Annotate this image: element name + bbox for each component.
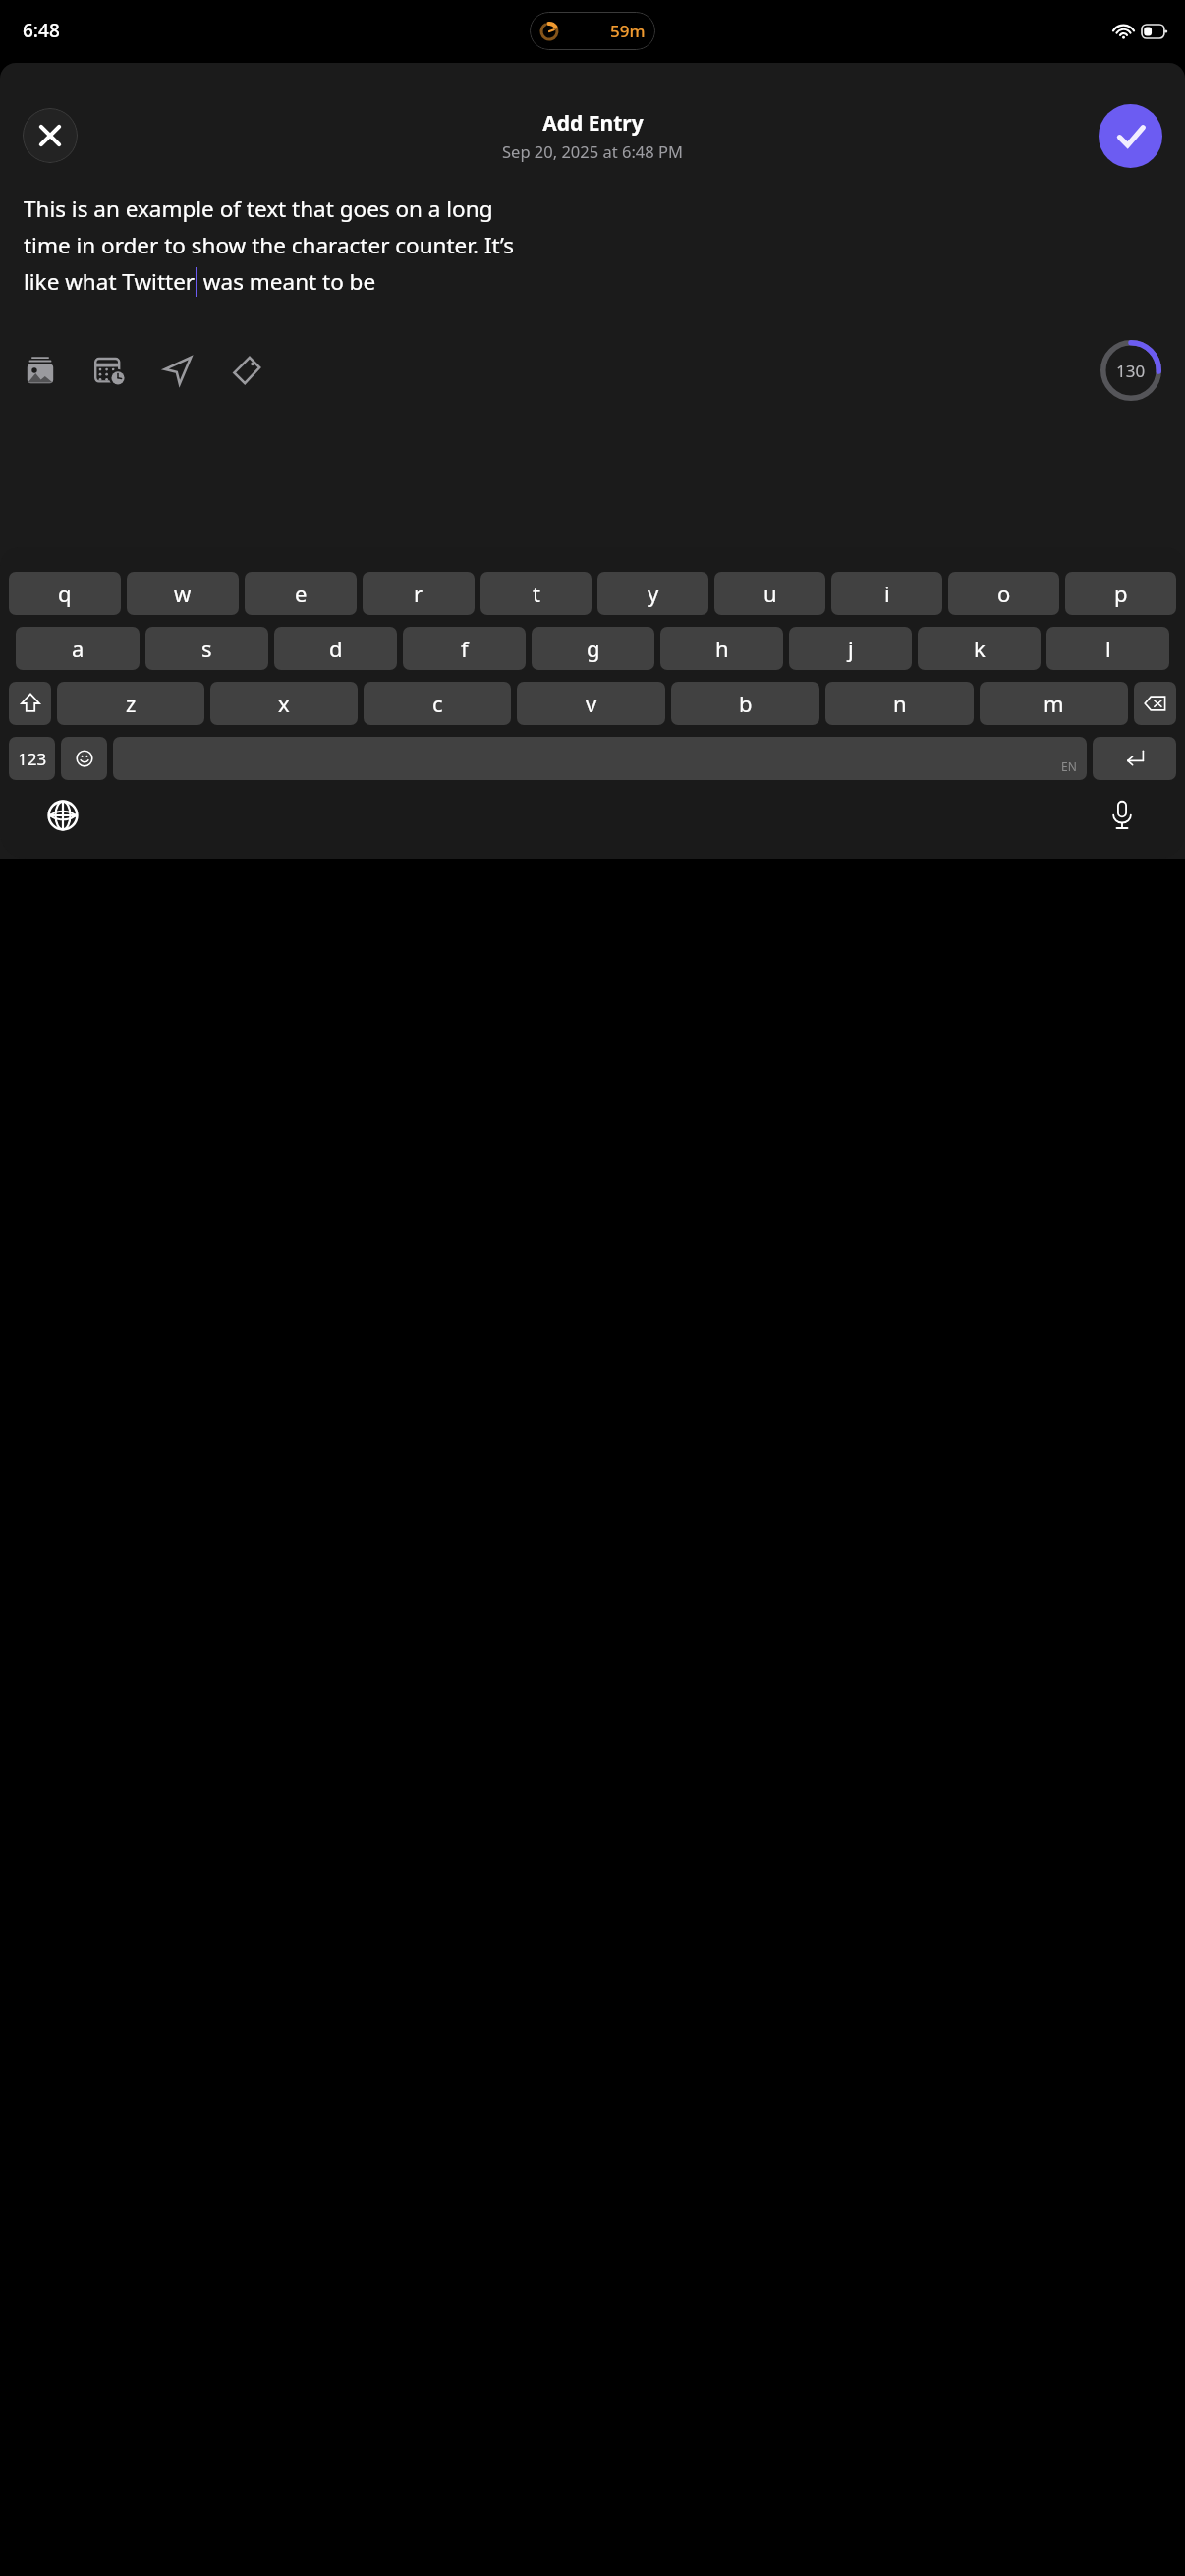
button[interactable]: e — [245, 572, 357, 615]
staticText: q — [58, 579, 72, 608]
staticText: Add Entry — [542, 109, 644, 138]
staticText: i — [884, 579, 890, 608]
staticText: g — [587, 634, 600, 663]
button[interactable]: w — [127, 572, 239, 615]
button[interactable]: v — [517, 682, 665, 725]
staticText: h — [715, 634, 729, 663]
staticText: 59m — [610, 20, 646, 42]
button[interactable]: Add photo — [19, 349, 62, 392]
staticText: n — [893, 689, 907, 718]
staticText: w — [174, 579, 192, 608]
staticText: This is an example of text that goes on … — [24, 194, 493, 224]
button[interactable]: i — [831, 572, 942, 615]
staticText: t — [533, 579, 540, 608]
staticText: p — [1114, 579, 1128, 608]
staticText: c — [432, 689, 443, 718]
staticText: like what Twitter — [24, 266, 196, 297]
button[interactable]: 130 — [1100, 340, 1161, 401]
button[interactable]: u — [714, 572, 825, 615]
button[interactable]: b — [671, 682, 819, 725]
button[interactable]: Voice input — [1100, 794, 1144, 837]
button[interactable]: c — [364, 682, 511, 725]
button[interactable]: p — [1065, 572, 1176, 615]
button[interactable]: Change language — [41, 794, 85, 837]
button[interactable]: z — [57, 682, 204, 725]
button[interactable]: x — [210, 682, 358, 725]
button[interactable]: y — [597, 572, 708, 615]
staticText: Sep 20, 2025 at 6:48 PM — [502, 140, 683, 162]
button[interactable]: l — [1046, 627, 1169, 670]
button[interactable]: q — [9, 572, 121, 615]
button[interactable]: n — [825, 682, 974, 725]
button[interactable]: Tag — [225, 349, 268, 392]
button[interactable]: g — [532, 627, 654, 670]
staticText: 6:48 — [23, 18, 60, 43]
staticText: k — [974, 634, 986, 663]
staticText: u — [763, 579, 777, 608]
staticText: f — [461, 634, 469, 663]
button[interactable]: j — [789, 627, 912, 670]
button[interactable]: h — [660, 627, 783, 670]
staticText: EN — [1061, 758, 1077, 774]
button[interactable]: Emoji — [61, 737, 107, 780]
staticText: time in order to show the character coun… — [24, 230, 515, 260]
staticText: b — [739, 689, 753, 718]
button[interactable]: a — [16, 627, 140, 670]
button[interactable]: m — [980, 682, 1128, 725]
button[interactable]: f — [403, 627, 526, 670]
button[interactable]: t — [480, 572, 592, 615]
button[interactable]: k — [918, 627, 1041, 670]
staticText: 130 — [1116, 360, 1146, 382]
button[interactable]: Location — [156, 349, 199, 392]
staticText: m — [1044, 689, 1064, 718]
staticText: o — [997, 579, 1011, 608]
button[interactable]: Backspace — [1134, 682, 1176, 725]
staticText: 123 — [18, 748, 47, 770]
button[interactable]: s — [145, 627, 268, 670]
staticText: was meant to be — [197, 266, 376, 297]
button[interactable]: Date and time — [87, 349, 131, 392]
button[interactable]: Shift — [9, 682, 51, 725]
button[interactable]: r — [363, 572, 475, 615]
staticText: a — [72, 634, 85, 663]
staticText: e — [295, 579, 308, 608]
button[interactable]: Enter — [1093, 737, 1176, 780]
staticText: z — [126, 689, 137, 718]
button[interactable]: d — [274, 627, 397, 670]
staticText: r — [414, 579, 423, 608]
button[interactable]: o — [948, 572, 1059, 615]
staticText: s — [201, 634, 212, 663]
button[interactable]: 123 — [9, 737, 55, 780]
staticText: v — [586, 689, 597, 718]
staticText: d — [329, 634, 343, 663]
staticText: x — [278, 689, 290, 718]
button[interactable]: Save — [1099, 104, 1162, 168]
staticText: l — [1105, 634, 1111, 663]
staticText: y — [648, 579, 659, 608]
button[interactable]: Close — [23, 108, 78, 163]
staticText: j — [848, 634, 854, 663]
